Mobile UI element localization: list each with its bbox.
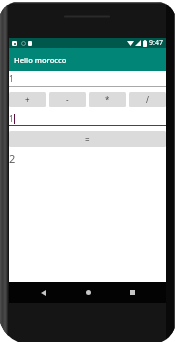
staticText: 2 bbox=[9, 151, 16, 165]
button[interactable]: * bbox=[89, 92, 126, 107]
button[interactable]: + bbox=[9, 92, 46, 107]
staticText: / bbox=[146, 94, 149, 105]
button[interactable]: Back bbox=[9, 282, 77, 303]
button[interactable]: - bbox=[49, 92, 86, 107]
button[interactable]: = bbox=[9, 131, 166, 147]
button[interactable]: / bbox=[129, 92, 166, 107]
staticText: 1 bbox=[9, 113, 14, 124]
staticText: - bbox=[66, 94, 69, 105]
staticText: + bbox=[25, 94, 30, 105]
staticText: = bbox=[85, 134, 90, 145]
button[interactable]: Recents bbox=[100, 282, 165, 303]
button[interactable]: Home bbox=[77, 282, 100, 303]
staticText: Hello morocco bbox=[14, 55, 67, 65]
staticText: 1 bbox=[9, 73, 14, 84]
staticText: * bbox=[105, 94, 110, 105]
staticText: 9:47 bbox=[149, 38, 163, 48]
